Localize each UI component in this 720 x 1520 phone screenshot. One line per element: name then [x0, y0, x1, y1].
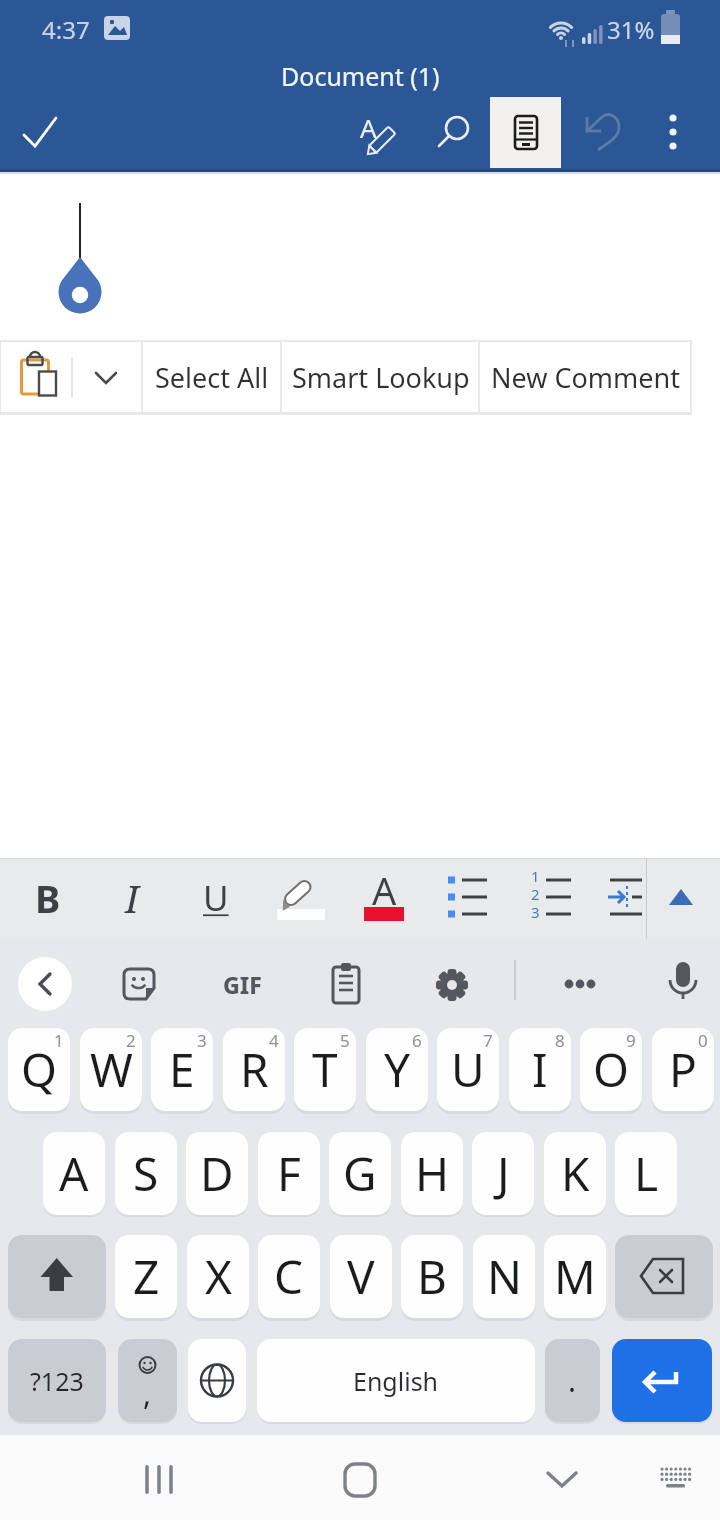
staticText: B [417, 1245, 447, 1308]
button[interactable]: I [509, 1028, 571, 1111]
staticText: 8 [555, 1029, 565, 1052]
staticText: 4 [269, 1029, 279, 1052]
button[interactable]: ?123 [8, 1339, 106, 1422]
staticText: , [143, 1373, 152, 1414]
button[interactable]: A [356, 858, 412, 938]
button[interactable]: S [115, 1132, 177, 1215]
staticText: 5 [340, 1029, 350, 1052]
button[interactable]: O [580, 1028, 642, 1111]
button[interactable]: X [187, 1235, 249, 1318]
button[interactable] [424, 960, 480, 1008]
button[interactable]: A [352, 104, 408, 160]
staticText: E [169, 1038, 195, 1101]
staticText: 0 [698, 1029, 708, 1052]
button[interactable]: E [151, 1028, 213, 1111]
staticText: X [205, 1245, 232, 1308]
staticText: 2 [126, 1029, 136, 1052]
staticText: W [90, 1038, 133, 1101]
button[interactable]: . [545, 1339, 600, 1422]
staticText: F [277, 1142, 301, 1205]
button[interactable]: F [258, 1132, 320, 1215]
button[interactable] [490, 97, 561, 168]
button[interactable] [119, 1437, 199, 1517]
button[interactable]: W [80, 1028, 142, 1111]
button[interactable]: A [43, 1132, 105, 1215]
button[interactable] [112, 962, 168, 1006]
staticText: Smart Lookup [292, 359, 470, 396]
button[interactable] [615, 1235, 713, 1318]
staticText: U [451, 1038, 485, 1101]
staticText: L [634, 1142, 659, 1205]
button[interactable] [440, 858, 496, 938]
staticText: N [487, 1245, 522, 1308]
button[interactable]: U [188, 858, 244, 938]
button[interactable]: English [257, 1339, 535, 1422]
button[interactable]: H [401, 1132, 463, 1215]
button[interactable]: V [330, 1235, 392, 1318]
staticText: New Comment [491, 359, 680, 396]
staticText: T [312, 1038, 338, 1101]
button[interactable] [602, 858, 646, 938]
button[interactable]: Z [115, 1235, 177, 1318]
button[interactable]: 1 [524, 858, 580, 938]
button[interactable] [522, 1437, 602, 1517]
button[interactable] [318, 960, 374, 1008]
staticText: Y [384, 1038, 411, 1101]
button[interactable]: J [472, 1132, 534, 1215]
button[interactable] [8, 1235, 106, 1318]
button[interactable] [655, 958, 711, 1010]
button[interactable]: , [118, 1339, 177, 1422]
button[interactable]: New Comment [480, 341, 691, 413]
button[interactable]: P [652, 1028, 714, 1111]
button[interactable]: Q [8, 1028, 70, 1111]
button[interactable]: GIF [212, 962, 272, 1006]
button[interactable]: N [473, 1235, 535, 1318]
button[interactable]: U [437, 1028, 499, 1111]
button[interactable] [428, 104, 484, 160]
staticText: I [125, 872, 139, 924]
button[interactable]: I [104, 858, 160, 938]
button[interactable] [652, 104, 694, 160]
staticText: P [669, 1038, 697, 1101]
button[interactable] [18, 957, 72, 1011]
button[interactable] [14, 106, 70, 158]
button[interactable]: D [186, 1132, 248, 1215]
staticText: 3 [197, 1029, 207, 1052]
staticText: 9 [626, 1029, 636, 1052]
button[interactable]: R [223, 1028, 285, 1111]
button[interactable]: Y [366, 1028, 428, 1111]
staticText: 31% [607, 13, 655, 46]
button[interactable] [644, 1437, 714, 1517]
button[interactable] [570, 104, 626, 160]
staticText: GIF [223, 969, 262, 1000]
button[interactable]: B [401, 1235, 463, 1318]
staticText: D [200, 1142, 234, 1205]
button[interactable]: Smart Lookup [282, 341, 479, 413]
button[interactable]: Select All [143, 341, 281, 413]
staticText: O [593, 1038, 629, 1101]
button[interactable] [272, 858, 328, 938]
staticText: . [568, 1360, 577, 1401]
staticText: S [133, 1142, 159, 1205]
button[interactable]: T [294, 1028, 356, 1111]
staticText: Document (1) [281, 59, 440, 93]
button[interactable] [320, 1437, 400, 1517]
button[interactable] [80, 347, 132, 407]
button[interactable]: M [544, 1235, 606, 1318]
staticText: A [360, 110, 377, 145]
button[interactable]: B [20, 858, 76, 938]
staticText: J [497, 1142, 510, 1205]
staticText: 3 [531, 902, 540, 922]
button[interactable] [552, 962, 608, 1006]
button[interactable]: C [258, 1235, 320, 1318]
staticText: C [274, 1245, 304, 1308]
button[interactable]: G [329, 1132, 391, 1215]
button[interactable] [654, 858, 710, 938]
button[interactable]: K [544, 1132, 606, 1215]
button[interactable] [188, 1339, 246, 1422]
button[interactable]: L [615, 1132, 677, 1215]
button[interactable] [612, 1339, 712, 1422]
button[interactable] [10, 347, 66, 407]
staticText: Select All [155, 359, 269, 396]
staticText: A [372, 864, 397, 916]
